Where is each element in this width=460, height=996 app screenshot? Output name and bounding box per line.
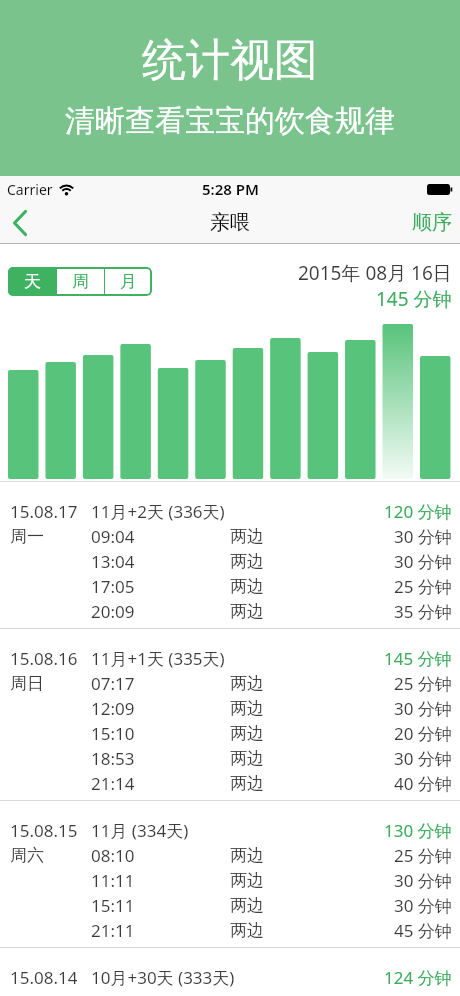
staticText: 145 分钟 (384, 647, 452, 670)
staticText: 21:11 (91, 919, 135, 942)
staticText: 20 分钟 (394, 722, 452, 745)
staticText: 30 分钟 (394, 869, 452, 892)
staticText: 两边 (230, 551, 264, 572)
staticText: 17:05 (91, 575, 135, 598)
staticText: 月 (120, 271, 137, 292)
staticText: 07:17 (91, 672, 135, 695)
staticText: 两边 (230, 748, 264, 769)
staticText: 25 分钟 (394, 672, 452, 695)
button[interactable]: 15.08.16 (0, 628, 460, 800)
staticText: 13:04 (91, 550, 135, 573)
staticText: 两边 (230, 845, 264, 866)
staticText: 11月 (334天) (91, 819, 189, 842)
staticText: 顺序 (412, 210, 452, 235)
staticText: 124 分钟 (384, 966, 452, 989)
staticText: 两边 (230, 576, 264, 597)
staticText: Carrier (7, 180, 53, 199)
staticText: 两边 (230, 920, 264, 941)
staticText: 两边 (230, 526, 264, 547)
staticText: 130 分钟 (384, 819, 452, 842)
button[interactable]: 天 (8, 267, 152, 296)
staticText: 两边 (230, 895, 264, 916)
staticText: 两边 (230, 673, 264, 694)
button[interactable] (0, 202, 40, 243)
staticText: 45 分钟 (394, 919, 452, 942)
staticText: 周一 (10, 526, 44, 547)
button[interactable]: 月 (105, 267, 152, 296)
staticText: 统计视图 (142, 33, 318, 88)
staticText: 10月+30天 (333天) (91, 966, 235, 989)
staticText: 09:04 (91, 525, 135, 548)
staticText: 两边 (230, 870, 264, 891)
button[interactable]: 周 (57, 267, 104, 296)
button[interactable]: 15.08.15 (0, 800, 460, 947)
staticText: 35 分钟 (394, 600, 452, 623)
staticText: 12:09 (91, 697, 135, 720)
staticText: 周 (72, 271, 89, 292)
staticText: 周六 (10, 845, 44, 866)
staticText: 天 (24, 271, 41, 292)
button[interactable]: 15.08.14 (0, 947, 460, 994)
staticText: 15.08.16 (10, 647, 78, 670)
staticText: 30 分钟 (394, 550, 452, 573)
staticText: 15:11 (91, 894, 135, 917)
staticText: 30 分钟 (394, 697, 452, 720)
staticText: 两边 (230, 601, 264, 622)
staticText: 30 分钟 (394, 894, 452, 917)
button[interactable]: 顺序 (412, 210, 460, 235)
staticText: 08:10 (91, 844, 135, 867)
staticText: 15.08.14 (10, 966, 78, 989)
staticText: 20:09 (91, 600, 135, 623)
staticText: 15.08.17 (10, 500, 78, 523)
staticText: 周日 (10, 673, 44, 694)
staticText: 11月+1天 (335天) (91, 647, 225, 670)
staticText: 两边 (230, 723, 264, 744)
staticText: 2015年 08月 16日 (298, 260, 452, 286)
button[interactable]: 天 (8, 267, 56, 296)
staticText: 清晰查看宝宝的饮食规律 (65, 102, 395, 140)
staticText: 30 分钟 (394, 525, 452, 548)
staticText: 25 分钟 (394, 575, 452, 598)
staticText: 25 分钟 (394, 844, 452, 867)
button[interactable]: 15.08.17 (0, 481, 460, 628)
staticText: 145 分钟 (376, 286, 452, 312)
staticText: 15.08.15 (10, 819, 78, 842)
staticText: 5:28 PM (202, 179, 259, 199)
staticText: 15:10 (91, 722, 135, 745)
staticText: 11月+2天 (336天) (91, 500, 225, 523)
staticText: 亲喂 (210, 210, 250, 235)
staticText: 30 分钟 (394, 747, 452, 770)
staticText: 21:14 (91, 772, 135, 795)
staticText: 40 分钟 (394, 772, 452, 795)
staticText: 两边 (230, 698, 264, 719)
staticText: 两边 (230, 773, 264, 794)
staticText: 11:11 (91, 869, 135, 892)
staticText: 120 分钟 (384, 500, 452, 523)
staticText: 18:53 (91, 747, 135, 770)
